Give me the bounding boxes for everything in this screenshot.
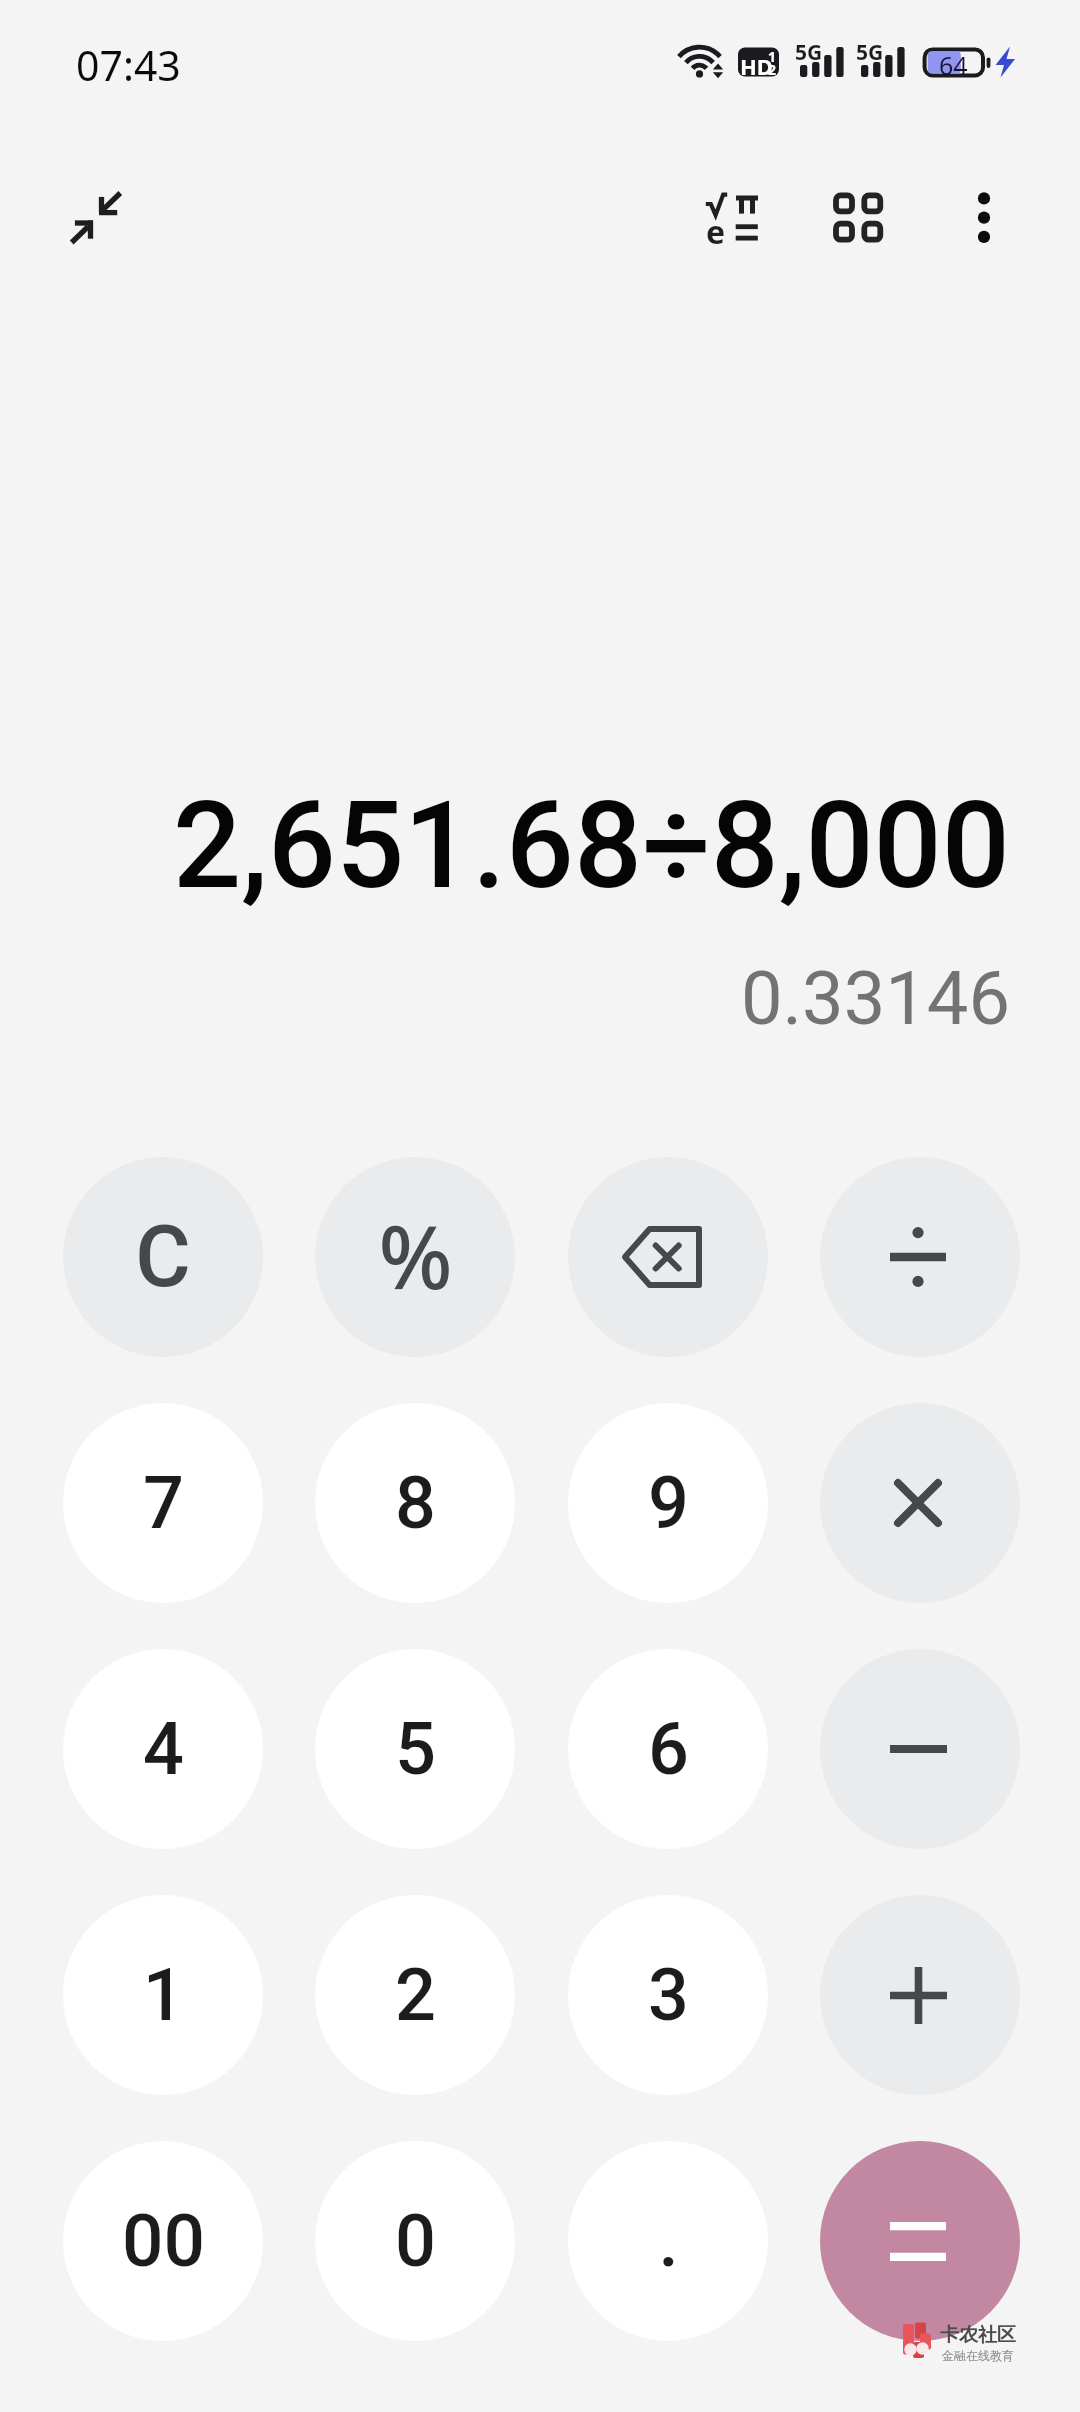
staticText: 卡农社区 (940, 2323, 1016, 2347)
button[interactable]: 2 (315, 1895, 515, 2095)
button[interactable]: 7 (63, 1403, 263, 1603)
button[interactable]: Apps (806, 168, 910, 272)
button[interactable]: 3 (568, 1895, 768, 2095)
staticText: . (658, 2199, 679, 2283)
button[interactable]: 8 (315, 1403, 515, 1603)
button[interactable]: 00 (63, 2141, 263, 2341)
button[interactable]: Plus (820, 1895, 1020, 2095)
button[interactable]: 1 (63, 1895, 263, 2095)
staticText: 5 (395, 1707, 436, 1791)
staticText: 00 (122, 2198, 205, 2284)
staticText: 3 (648, 1953, 689, 2037)
staticText: 金融在线教育 (942, 2348, 1014, 2363)
staticText: 2 (768, 60, 777, 79)
button[interactable]: C (63, 1157, 263, 1357)
staticText: 6 (648, 1707, 689, 1791)
staticText: 2 (395, 1953, 436, 2037)
button[interactable]: % (315, 1157, 515, 1357)
button[interactable]: Minus (820, 1649, 1020, 1849)
staticText: 64 (939, 48, 968, 82)
button[interactable]: 0 (315, 2141, 515, 2341)
staticText: 2,651.68÷8,000 (0, 776, 1010, 917)
button[interactable]: 4 (63, 1649, 263, 1849)
staticText: 4 (143, 1707, 184, 1791)
staticText: C (135, 1207, 191, 1307)
staticText: 9 (648, 1461, 689, 1545)
staticText: e (706, 210, 726, 254)
staticText: 8 (395, 1461, 436, 1545)
button[interactable]: 6 (568, 1649, 768, 1849)
button[interactable]: . (568, 2141, 768, 2341)
button[interactable]: 9 (568, 1403, 768, 1603)
button[interactable]: Divide (820, 1157, 1020, 1357)
button[interactable]: Scientific mode (678, 163, 782, 267)
button[interactable]: Multiply (820, 1403, 1020, 1603)
staticText: % (378, 1196, 453, 1314)
staticText: 5G (856, 38, 884, 67)
button[interactable]: More options (932, 168, 1036, 272)
staticText: 1 (768, 47, 777, 66)
staticText: 5G (795, 38, 823, 67)
staticText: 1 (143, 1953, 184, 2037)
staticText: 7 (143, 1461, 184, 1545)
button[interactable]: Backspace (568, 1157, 768, 1357)
button[interactable]: Equals (820, 2141, 1020, 2341)
staticText: HD (740, 51, 773, 81)
button[interactable]: 5 (315, 1649, 515, 1849)
staticText: 07:43 (76, 37, 181, 93)
staticText: 0.33146 (0, 955, 1010, 1042)
button[interactable]: Collapse (45, 166, 149, 270)
staticText: 0 (395, 2199, 436, 2283)
